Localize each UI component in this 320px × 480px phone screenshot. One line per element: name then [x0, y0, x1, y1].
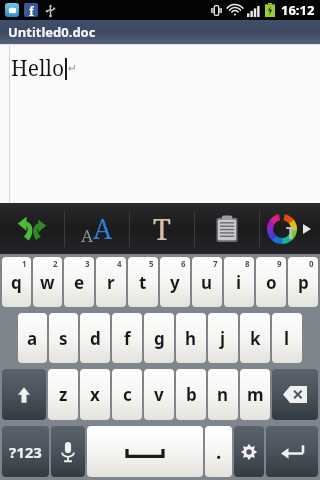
staticText: 7	[213, 258, 218, 269]
staticText: j	[220, 327, 226, 350]
staticText: 8	[245, 258, 250, 269]
staticText: h	[185, 327, 197, 350]
button[interactable]: d	[80, 313, 110, 363]
button[interactable]: Voice input	[51, 426, 85, 477]
staticText: f	[29, 3, 34, 17]
button[interactable]: i	[224, 257, 254, 307]
staticText: t	[139, 271, 147, 294]
button[interactable]: m	[240, 369, 270, 420]
button[interactable]: Text colour	[260, 203, 320, 254]
staticText: A	[93, 210, 113, 247]
staticText: e	[74, 271, 85, 294]
button[interactable]: t	[128, 257, 158, 307]
button[interactable]: z	[48, 369, 78, 420]
staticText: 16:12	[281, 1, 315, 19]
staticText: v	[154, 383, 164, 406]
button[interactable]: Backspace	[272, 369, 318, 420]
staticText: p	[298, 271, 309, 294]
staticText: A	[81, 224, 93, 247]
staticText: 3	[85, 258, 90, 269]
button[interactable]: u	[192, 257, 222, 307]
staticText: i	[236, 271, 242, 294]
staticText: 9	[277, 258, 282, 269]
button[interactable]: Paste	[195, 203, 259, 254]
button[interactable]: Hello	[0, 44, 320, 203]
button[interactable]: Shift	[2, 369, 46, 420]
staticText: c	[123, 383, 132, 406]
staticText: y	[170, 271, 180, 294]
staticText: x	[90, 383, 100, 406]
button[interactable]: y	[160, 257, 190, 307]
button[interactable]: n	[208, 369, 238, 420]
button[interactable]: q	[2, 257, 31, 307]
staticText: o	[266, 271, 277, 294]
staticText: b	[186, 383, 197, 406]
button[interactable]: Space	[87, 426, 203, 477]
staticText: g	[154, 327, 165, 350]
staticText: r	[107, 271, 115, 294]
staticText: m	[247, 383, 264, 406]
staticText: ?123	[9, 442, 42, 462]
staticText: a	[27, 327, 38, 350]
staticText: Untitled0.doc	[8, 23, 96, 41]
button[interactable]: Settings	[234, 426, 264, 477]
staticText: .	[216, 439, 222, 465]
staticText: d	[90, 327, 101, 350]
staticText: 6	[181, 258, 186, 269]
staticText: Hello	[11, 54, 65, 83]
staticText: z	[59, 383, 68, 406]
staticText: 0	[309, 258, 314, 269]
staticText: u	[201, 271, 213, 294]
button[interactable]: Symbols	[2, 426, 49, 477]
button[interactable]: a	[18, 313, 47, 363]
staticText: l	[284, 327, 290, 350]
button[interactable]: Font size	[65, 203, 129, 254]
button[interactable]: b	[176, 369, 206, 420]
staticText: 4	[117, 258, 122, 269]
staticText: n	[217, 383, 229, 406]
button[interactable]: e	[64, 257, 94, 307]
button[interactable]: w	[33, 257, 62, 307]
staticText: s	[59, 327, 68, 350]
button[interactable]: o	[256, 257, 286, 307]
staticText: w	[40, 271, 55, 294]
staticText: f	[124, 327, 131, 350]
button[interactable]: k	[240, 313, 270, 363]
staticText: k	[250, 327, 261, 350]
button[interactable]: Undo and redo	[0, 203, 64, 254]
button[interactable]: x	[80, 369, 110, 420]
button[interactable]: l	[272, 313, 302, 363]
button[interactable]: Enter	[266, 426, 318, 477]
staticText: q	[11, 271, 22, 294]
button[interactable]: v	[144, 369, 174, 420]
button[interactable]: j	[208, 313, 238, 363]
staticText: 1	[22, 258, 27, 269]
button[interactable]: Untitled0.doc	[0, 20, 320, 44]
button[interactable]: g	[144, 313, 174, 363]
button[interactable]: c	[112, 369, 142, 420]
button[interactable]: h	[176, 313, 206, 363]
button[interactable]: Typeface	[130, 203, 194, 254]
button[interactable]: p	[288, 257, 318, 307]
staticText: T	[153, 209, 171, 248]
button[interactable]: s	[49, 313, 78, 363]
staticText: 2	[53, 258, 58, 269]
button[interactable]: f	[112, 313, 142, 363]
button[interactable]: .	[205, 426, 232, 477]
staticText: 5	[149, 258, 154, 269]
staticText: ↵	[68, 62, 78, 75]
button[interactable]: r	[96, 257, 126, 307]
staticText: T	[286, 222, 296, 244]
